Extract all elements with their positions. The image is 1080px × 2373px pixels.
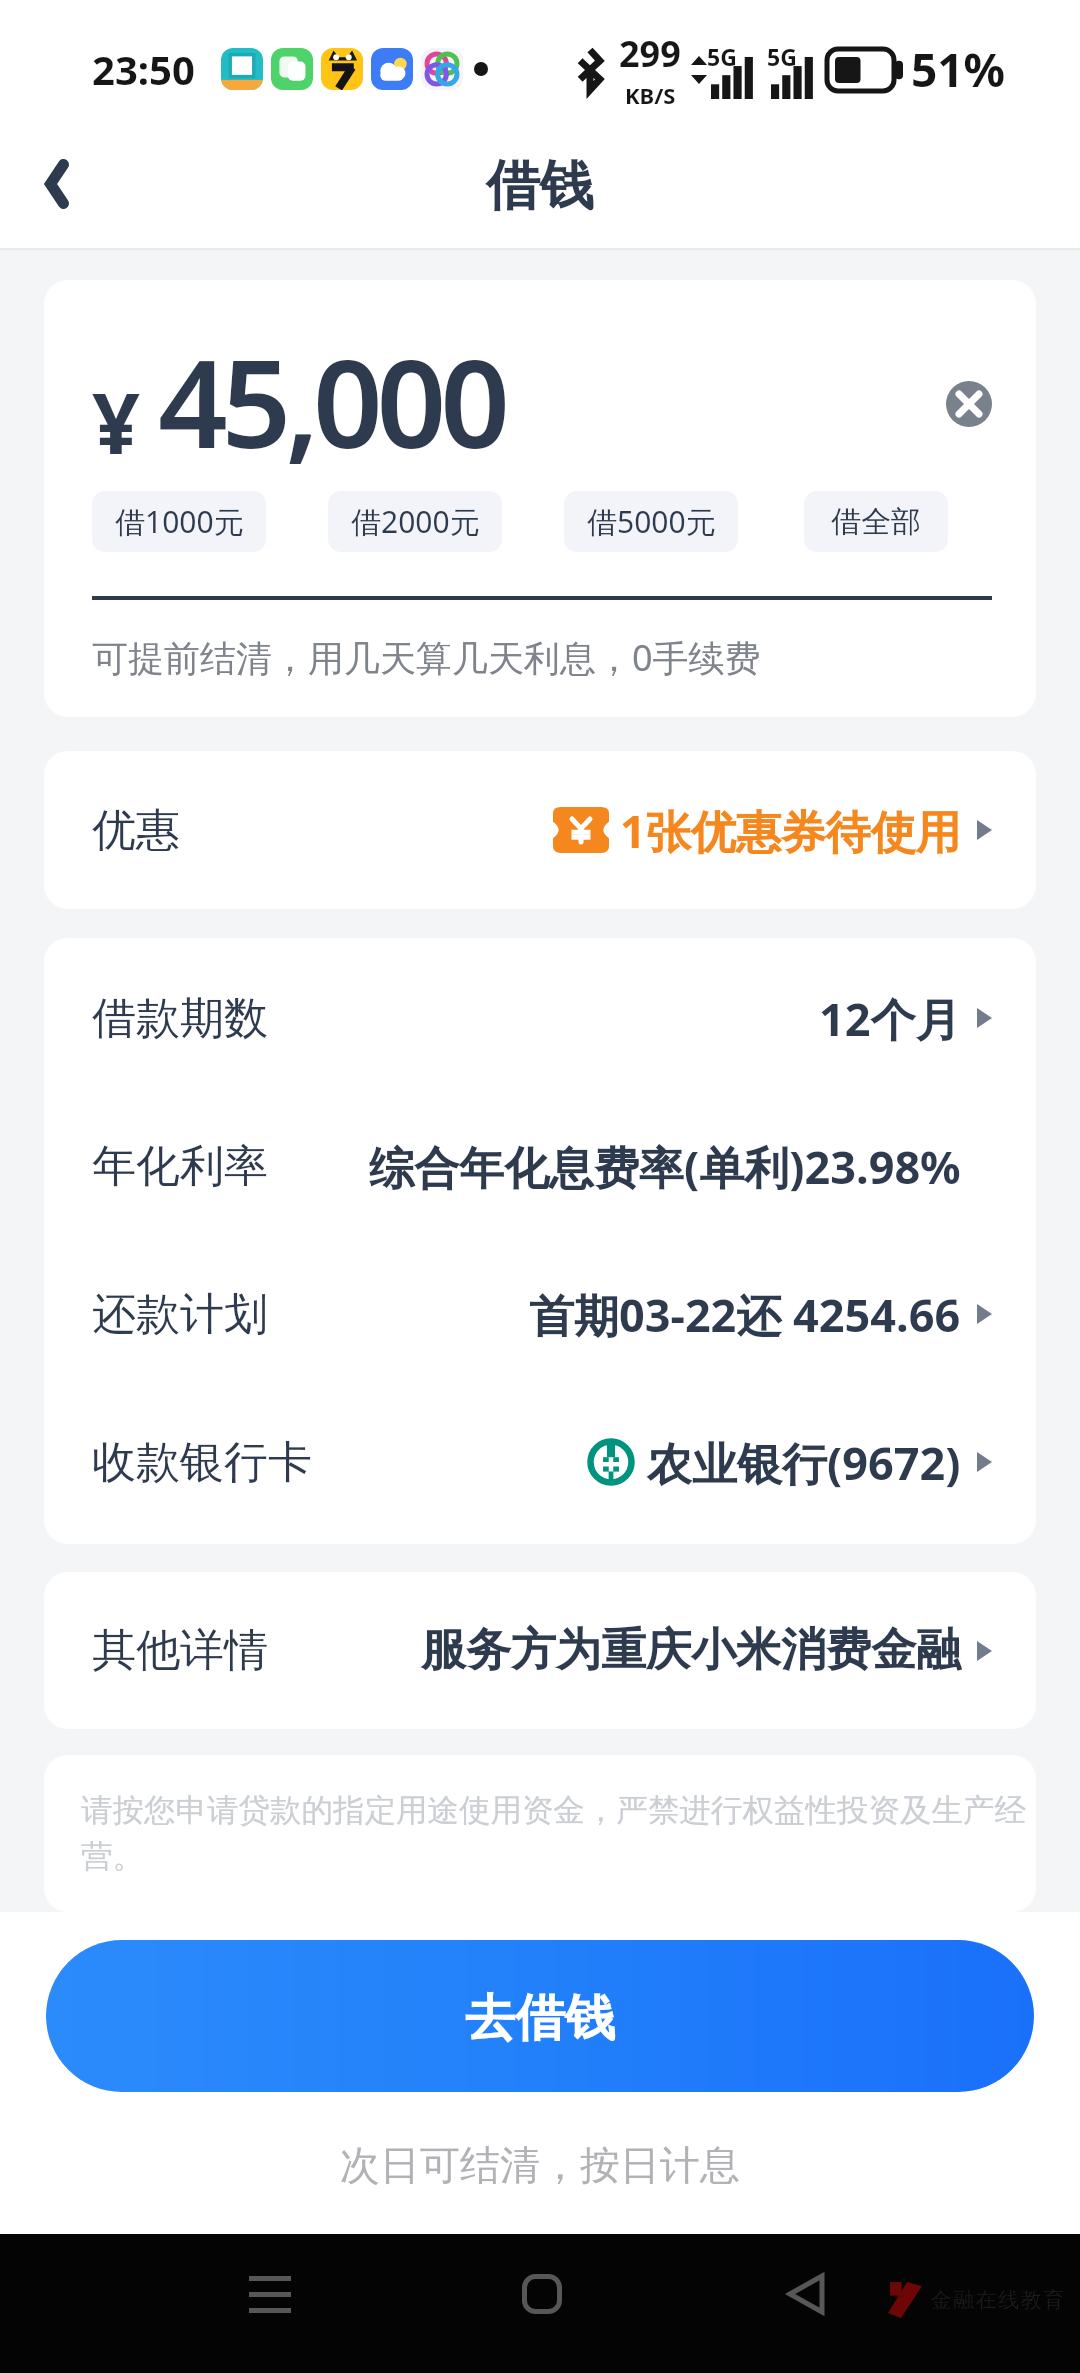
staticText: 收款银行卡 bbox=[92, 1435, 312, 1490]
staticText: 年化利率 bbox=[92, 1139, 268, 1194]
button[interactable]: Back bbox=[9, 136, 105, 232]
staticText: 其他详情 bbox=[92, 1623, 268, 1678]
button[interactable]: 其他详情 bbox=[44, 1572, 1036, 1729]
staticText: 借5000元 bbox=[587, 501, 716, 542]
button[interactable]: 去借钱 bbox=[46, 1940, 1034, 2092]
staticText: 优惠 bbox=[92, 803, 180, 858]
button[interactable]: Home bbox=[494, 2246, 590, 2342]
staticText: 299 bbox=[619, 29, 681, 78]
staticText: 去借钱 bbox=[465, 1987, 615, 2050]
staticText: ¥ bbox=[92, 364, 141, 478]
staticText: 服务方为重庆小米消费金融 bbox=[421, 1622, 961, 1679]
staticText: 可提前结清，用几天算几天利息，0手续费 bbox=[92, 633, 761, 682]
button[interactable]: Back bbox=[758, 2246, 854, 2342]
staticText: 借1000元 bbox=[115, 501, 244, 542]
button[interactable]: Clear amount bbox=[946, 381, 992, 427]
staticText: 农业银行(9672) bbox=[647, 1432, 961, 1493]
staticText: 1张优惠券待使用 bbox=[620, 800, 961, 861]
button[interactable]: Recent apps bbox=[222, 2246, 318, 2342]
staticText: 借2000元 bbox=[351, 501, 480, 542]
staticText: KB/S bbox=[625, 80, 676, 110]
button[interactable]: 借全部 bbox=[804, 491, 948, 552]
button[interactable]: 借2000元 bbox=[328, 491, 502, 552]
button[interactable]: 收款银行卡 bbox=[92, 1388, 992, 1536]
staticText: 金融在线教育 bbox=[930, 2287, 1065, 2313]
staticText: 综合年化息费率(单利)23.98% bbox=[369, 1136, 961, 1197]
staticText: 5G bbox=[767, 41, 797, 72]
staticText: 23:50 bbox=[92, 42, 195, 96]
staticText: 12个月 bbox=[819, 988, 961, 1049]
button[interactable]: 优惠 bbox=[44, 751, 1036, 909]
staticText: 5G bbox=[707, 41, 737, 72]
staticText: 借全部 bbox=[831, 503, 921, 541]
button[interactable]: 借5000元 bbox=[564, 491, 738, 552]
staticText: 首期03-22还 4254.66 bbox=[529, 1284, 961, 1345]
button[interactable]: 年化利率 bbox=[92, 1092, 992, 1240]
button[interactable]: 还款计划 bbox=[92, 1240, 992, 1388]
staticText: 次日可结清，按日计息 bbox=[0, 2140, 1080, 2190]
staticText: 51% bbox=[911, 38, 1006, 101]
staticText: 还款计划 bbox=[92, 1287, 268, 1342]
button[interactable]: 借1000元 bbox=[92, 491, 266, 552]
staticText: 借钱 bbox=[486, 152, 594, 220]
staticText: 请按您申请贷款的指定用途使用资金，严禁进行权益性投资及生产经营。 bbox=[81, 1791, 1027, 1876]
staticText: 45,000 bbox=[158, 318, 504, 484]
staticText: 借款期数 bbox=[92, 991, 268, 1046]
button[interactable]: 借款期数 bbox=[92, 944, 992, 1092]
